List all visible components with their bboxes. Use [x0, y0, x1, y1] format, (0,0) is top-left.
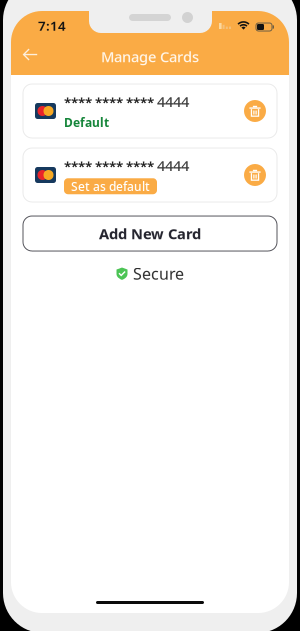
staticText: Set as default [71, 178, 150, 194]
button[interactable]: Back [15, 39, 45, 69]
staticText: **** **** **** [64, 94, 154, 111]
staticText: **** **** **** [64, 157, 154, 175]
staticText: Add New Card [99, 224, 201, 243]
button[interactable]: Set as default [64, 178, 157, 194]
staticText: 4444 [157, 156, 189, 175]
staticText: Secure [133, 263, 184, 284]
staticText: 7:14 [38, 17, 66, 34]
button[interactable]: Delete card [244, 100, 266, 122]
staticText: Default [64, 114, 109, 130]
button[interactable]: Add New Card [23, 216, 277, 251]
staticText: Manage Cards [101, 47, 199, 66]
button[interactable]: Delete card [244, 164, 266, 186]
staticText: 4444 [157, 92, 189, 111]
